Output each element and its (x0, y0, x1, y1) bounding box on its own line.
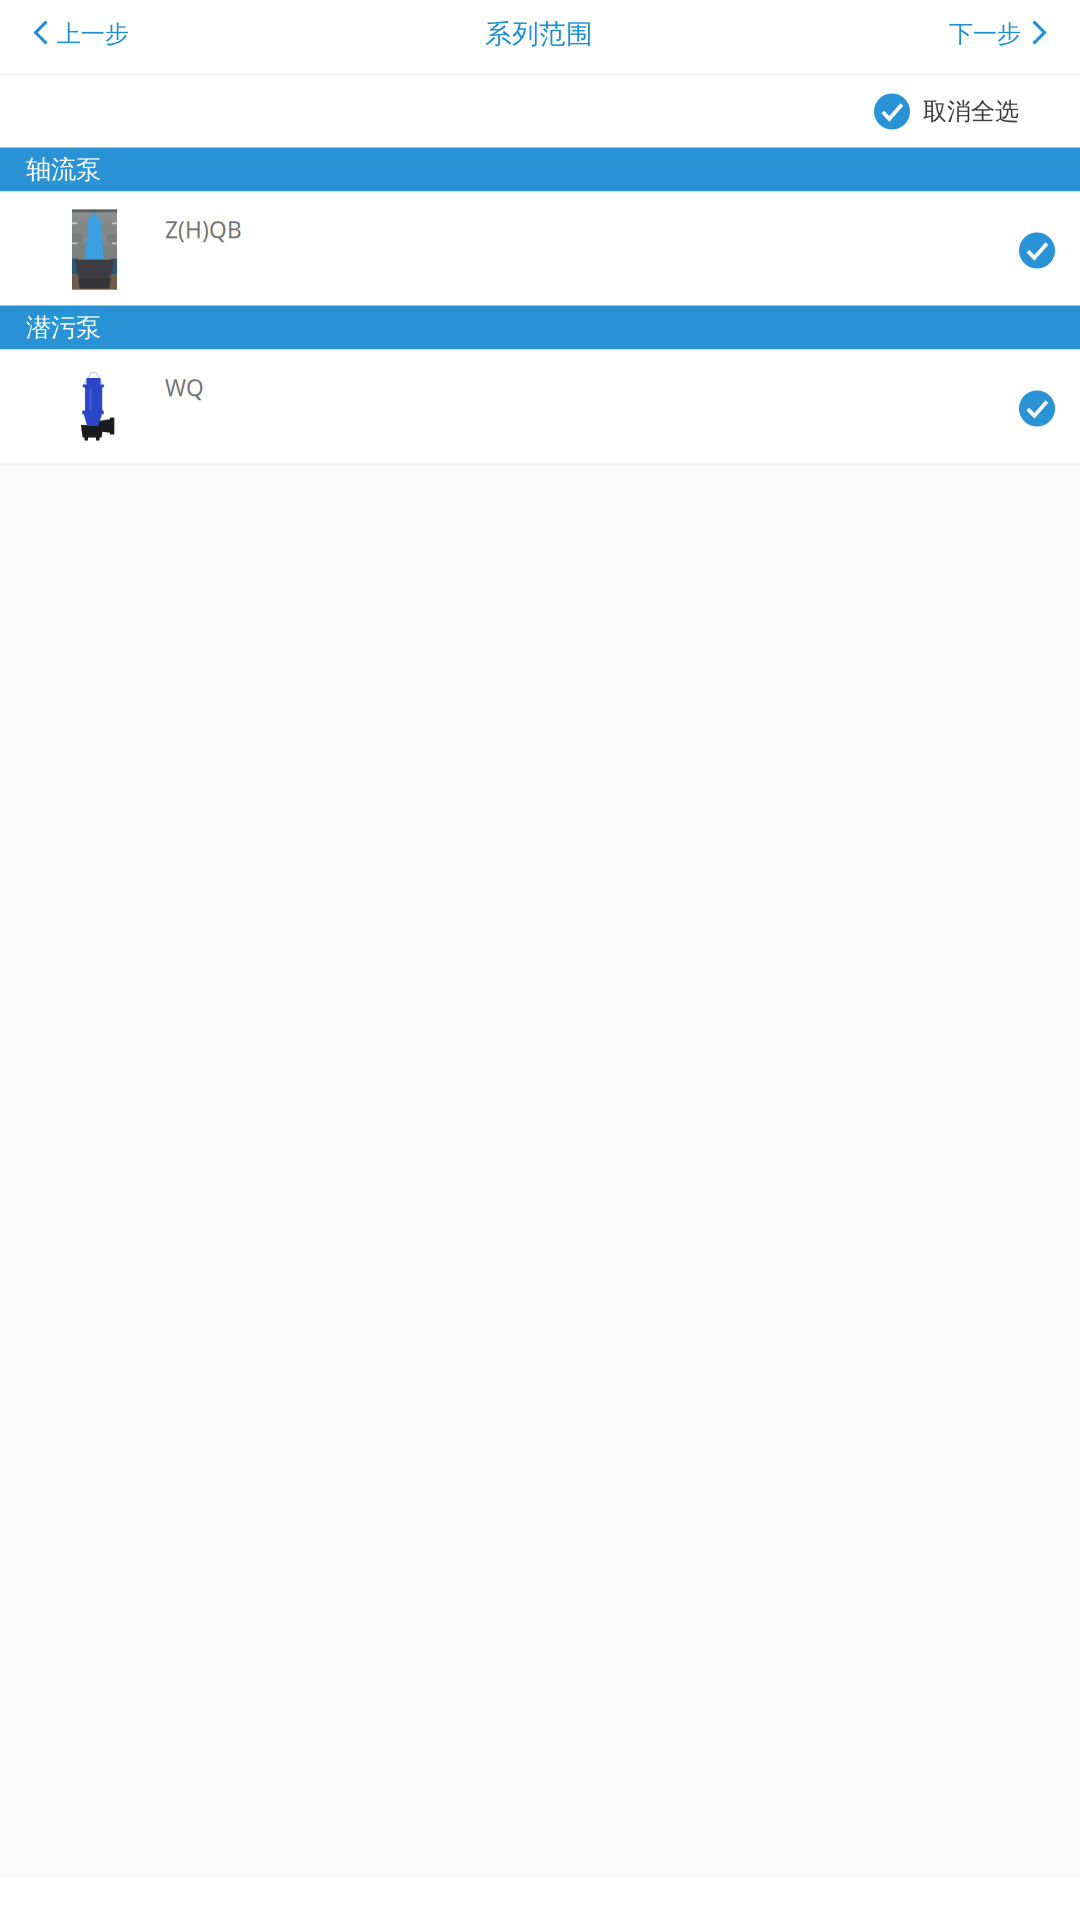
staticText: 潜污泵 (26, 312, 101, 343)
staticText: 取消全选 (923, 97, 1019, 126)
button[interactable]: 上一步 (0, 0, 147, 74)
button[interactable]: WQ (0, 349, 1080, 463)
button[interactable]: Z(H)QB (0, 191, 1080, 305)
button[interactable]: Deselect Z(H)QB (1009, 218, 1065, 278)
staticText: 下一步 (949, 19, 1021, 49)
staticText: Z(H)QB (165, 214, 242, 245)
staticText: 系列范围 (485, 18, 593, 50)
button[interactable]: Deselect WQ (1009, 376, 1065, 436)
button[interactable]: 取消全选 (862, 75, 1031, 147)
staticText: 上一步 (57, 19, 129, 49)
staticText: 轴流泵 (26, 154, 101, 185)
staticText: WQ (165, 372, 204, 403)
button[interactable]: 下一步 (931, 0, 1080, 74)
